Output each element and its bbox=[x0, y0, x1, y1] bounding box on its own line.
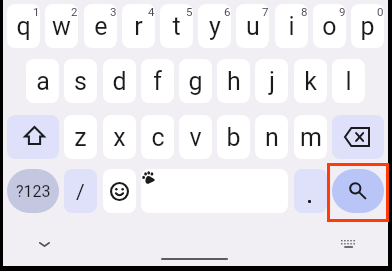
button[interactable]: c bbox=[141, 115, 174, 159]
staticText: x bbox=[113, 123, 126, 152]
staticText: 1 bbox=[33, 5, 40, 18]
button[interactable]: q bbox=[7, 4, 40, 48]
button[interactable]: n bbox=[255, 115, 288, 159]
staticText: ?123 bbox=[16, 182, 51, 201]
button[interactable]: k bbox=[294, 59, 327, 103]
staticText: e bbox=[94, 12, 108, 41]
staticText: v bbox=[189, 123, 202, 152]
staticText: o bbox=[322, 12, 337, 41]
staticText: 6 bbox=[224, 5, 231, 18]
staticText: l bbox=[345, 67, 352, 96]
button[interactable]: w bbox=[45, 4, 78, 48]
button[interactable]: Slash bbox=[64, 169, 97, 213]
button[interactable]: Switch keyboard bbox=[336, 232, 360, 256]
staticText: f bbox=[153, 67, 162, 96]
button[interactable]: s bbox=[64, 59, 97, 103]
button[interactable]: u bbox=[236, 4, 269, 48]
staticText: u bbox=[246, 12, 260, 41]
staticText: b bbox=[226, 123, 241, 152]
staticText: 0 bbox=[377, 5, 384, 18]
staticText: z bbox=[74, 123, 87, 152]
button[interactable]: p bbox=[351, 4, 384, 48]
button[interactable]: Search bbox=[332, 169, 384, 213]
staticText: 8 bbox=[301, 5, 308, 18]
staticText: 9 bbox=[339, 5, 346, 18]
button[interactable]: z bbox=[64, 115, 97, 159]
staticText: 5 bbox=[186, 5, 193, 18]
staticText: r bbox=[134, 12, 143, 41]
staticText: q bbox=[16, 12, 31, 41]
staticText: k bbox=[304, 67, 317, 96]
button[interactable]: x bbox=[103, 115, 136, 159]
staticText: w bbox=[52, 12, 71, 41]
button[interactable]: Period bbox=[294, 169, 327, 213]
staticText: j bbox=[269, 67, 275, 96]
button[interactable]: Shift bbox=[7, 115, 59, 159]
staticText: s bbox=[74, 67, 87, 96]
staticText: g bbox=[188, 67, 203, 96]
button[interactable]: Symbols bbox=[7, 169, 59, 213]
button[interactable]: d bbox=[103, 59, 136, 103]
staticText: h bbox=[227, 67, 241, 96]
staticText: p bbox=[360, 12, 375, 41]
staticText: 7 bbox=[262, 5, 269, 18]
staticText: a bbox=[36, 67, 50, 96]
button[interactable]: v bbox=[179, 115, 212, 159]
button[interactable]: a bbox=[26, 59, 59, 103]
staticText: 2 bbox=[71, 5, 78, 18]
button[interactable]: b bbox=[217, 115, 250, 159]
button[interactable]: f bbox=[141, 59, 174, 103]
button[interactable]: l bbox=[332, 59, 365, 103]
staticText: i bbox=[288, 12, 295, 41]
staticText: / bbox=[76, 180, 85, 205]
staticText: m bbox=[300, 123, 322, 152]
button[interactable]: r bbox=[122, 4, 155, 48]
staticText: c bbox=[151, 123, 165, 152]
staticText: d bbox=[112, 67, 127, 96]
button[interactable]: e bbox=[84, 4, 117, 48]
button[interactable]: m bbox=[294, 115, 327, 159]
button[interactable]: Backspace bbox=[332, 115, 384, 159]
staticText: 3 bbox=[110, 5, 117, 18]
button[interactable]: Hide keyboard bbox=[32, 232, 56, 256]
staticText: t bbox=[172, 12, 181, 41]
button[interactable]: o bbox=[313, 4, 346, 48]
button[interactable]: g bbox=[179, 59, 212, 103]
button[interactable]: i bbox=[275, 4, 308, 48]
staticText: 4 bbox=[148, 5, 155, 18]
staticText: n bbox=[265, 123, 279, 152]
button[interactable]: Space bbox=[141, 169, 288, 213]
button[interactable]: Emoji bbox=[103, 169, 136, 213]
staticText: y bbox=[209, 12, 221, 41]
button[interactable]: j bbox=[255, 59, 288, 103]
button[interactable]: y bbox=[198, 4, 231, 48]
button[interactable]: h bbox=[217, 59, 250, 103]
button[interactable]: t bbox=[160, 4, 193, 48]
